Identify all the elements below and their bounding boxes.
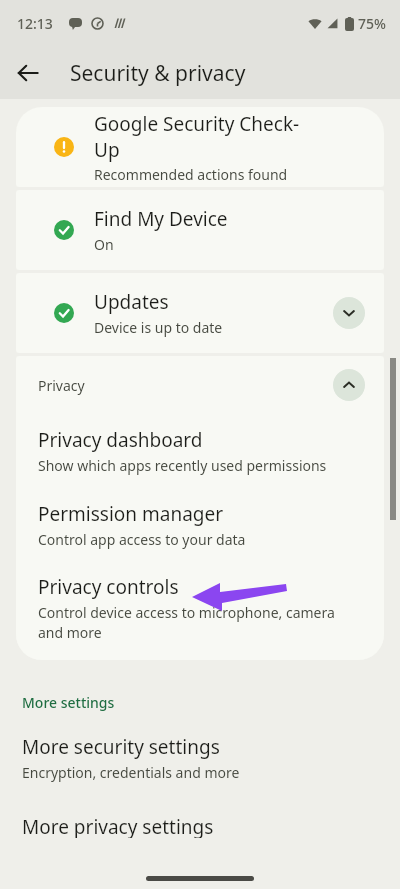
button[interactable]: Expand Updates xyxy=(333,297,365,329)
button[interactable]: Back xyxy=(8,53,48,93)
button[interactable]: Updates xyxy=(16,273,384,353)
staticText: Recommended actions found xyxy=(94,165,288,184)
staticText: More settings xyxy=(22,693,115,712)
staticText: 75% xyxy=(358,14,386,33)
button[interactable]: Privacy xyxy=(16,356,384,414)
staticText: Privacy dashboard xyxy=(38,427,203,453)
staticText: Google Security Check-Up xyxy=(94,111,324,162)
staticText: Find My Device xyxy=(94,206,228,232)
staticText: Control app access to your data xyxy=(38,530,246,549)
staticText: Device is up to date xyxy=(94,318,223,337)
staticText: Updates xyxy=(94,289,169,315)
staticText: Permission manager xyxy=(38,501,224,527)
staticText: More privacy settings xyxy=(22,814,214,838)
button[interactable]: Collapse Privacy xyxy=(333,369,365,401)
button[interactable]: More security settings xyxy=(16,730,384,786)
button[interactable]: More privacy settings xyxy=(16,814,384,838)
button[interactable]: Privacy controls xyxy=(16,562,384,660)
button[interactable]: Permission manager xyxy=(16,488,384,562)
staticText: Privacy xyxy=(38,376,85,395)
staticText: Privacy controls xyxy=(38,574,179,600)
staticText: Control device access to microphone, cam… xyxy=(38,603,358,642)
staticText: Security & privacy xyxy=(70,59,246,88)
button[interactable]: Find My Device xyxy=(16,190,384,270)
button[interactable]: Google Security Check-Up xyxy=(16,107,384,187)
staticText: Encryption, credentials and more xyxy=(22,763,240,782)
staticText: Show which apps recently used permission… xyxy=(38,456,327,475)
staticText: More security settings xyxy=(22,734,220,760)
staticText: On xyxy=(94,235,114,254)
staticText: 12:13 xyxy=(17,14,53,33)
button[interactable]: Privacy dashboard xyxy=(16,414,384,488)
